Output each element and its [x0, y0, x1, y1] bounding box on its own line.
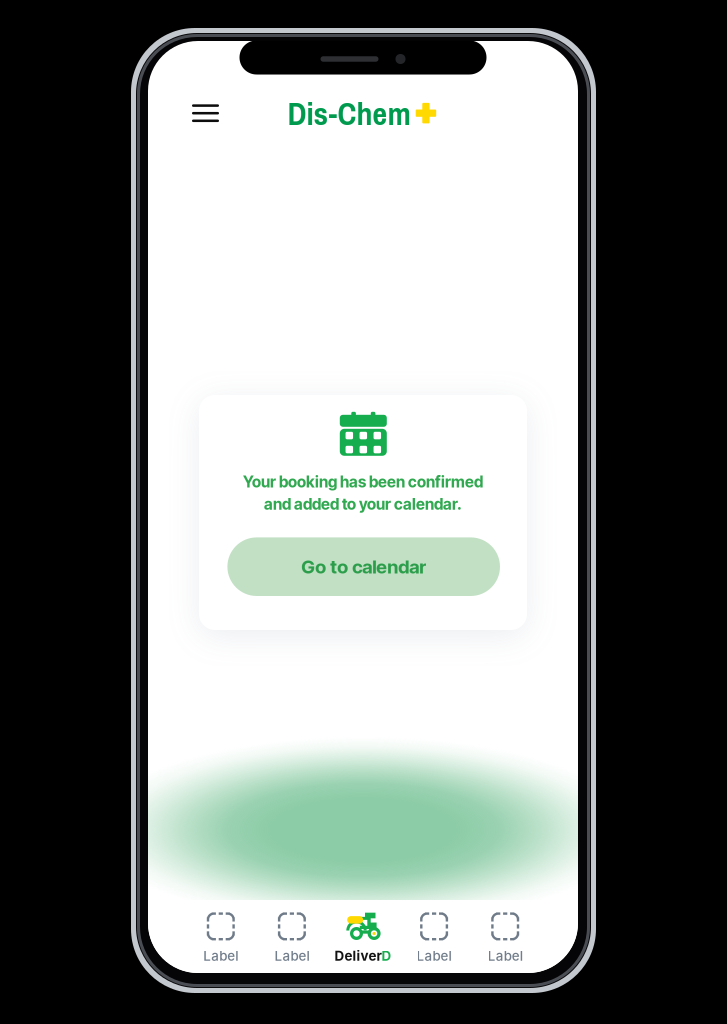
staticText: Label	[203, 948, 238, 964]
staticText: D	[381, 948, 391, 964]
button[interactable]: Label	[260, 900, 324, 973]
button[interactable]: Go to calendar	[227, 537, 500, 596]
staticText: Label	[274, 948, 309, 964]
staticText: Your booking has been confirmed	[243, 472, 483, 491]
button[interactable]: Menu	[181, 89, 229, 137]
button[interactable]: Deliver	[331, 900, 395, 973]
staticText: Deliver	[334, 948, 381, 964]
staticText: Label	[417, 948, 452, 964]
staticText: and added to your calendar.	[264, 495, 462, 514]
staticText: Go to calendar	[301, 555, 426, 578]
staticText: Dis-Chem	[287, 92, 410, 135]
staticText: Label	[488, 948, 523, 964]
button[interactable]: Label	[402, 900, 466, 973]
button[interactable]: Label	[189, 900, 253, 973]
button[interactable]: Label	[473, 900, 537, 973]
